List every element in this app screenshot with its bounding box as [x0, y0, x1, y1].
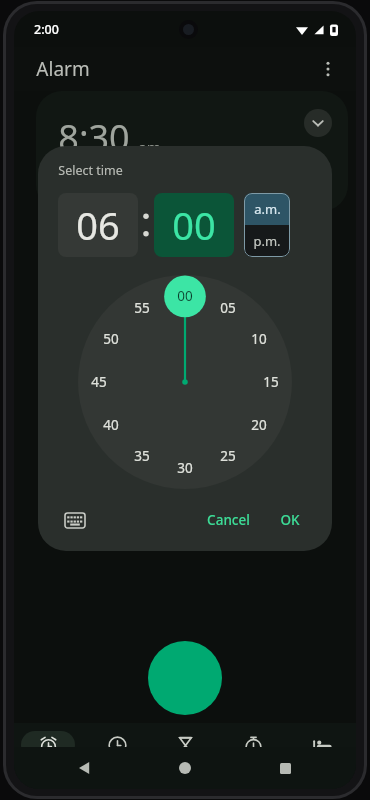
- staticText: 25: [220, 447, 236, 465]
- staticText: 45: [91, 373, 107, 391]
- staticText: Timer: [171, 763, 200, 777]
- button[interactable]: Stopwatch: [219, 723, 287, 777]
- button[interactable]: Switch to text input: [58, 503, 92, 537]
- button[interactable]: p.m.: [244, 225, 290, 257]
- button[interactable]: Home: [170, 753, 200, 783]
- button[interactable]: Cancel: [195, 503, 262, 537]
- staticText: 40: [103, 416, 119, 434]
- button[interactable]: More options: [308, 49, 348, 89]
- staticText: Select time: [58, 162, 123, 179]
- staticText: am: [138, 137, 161, 157]
- button[interactable]: Alarm: [14, 723, 82, 777]
- staticText: 00: [177, 287, 193, 305]
- staticText: a.m.: [254, 200, 281, 218]
- button[interactable]: Recent apps: [270, 753, 300, 783]
- staticText: 05: [220, 299, 236, 317]
- staticText: 20: [251, 416, 267, 434]
- button[interactable]: a.m.: [244, 193, 290, 225]
- staticText: 06: [76, 199, 120, 251]
- staticText: 8:30: [58, 113, 130, 162]
- staticText: 50: [103, 330, 119, 348]
- staticText: Alarm: [36, 56, 90, 82]
- button[interactable]: OK: [268, 503, 312, 537]
- staticText: 10: [251, 330, 267, 348]
- button[interactable]: 06: [58, 193, 138, 257]
- staticText: p.m.: [253, 232, 281, 250]
- staticText: 15: [263, 373, 279, 391]
- staticText: OK: [280, 511, 300, 529]
- button[interactable]: Expand alarm: [304, 109, 332, 137]
- button[interactable]: Clock: [83, 723, 151, 777]
- staticText: 55: [134, 299, 150, 317]
- staticText: 30: [177, 459, 193, 477]
- staticText: 35: [134, 447, 150, 465]
- button[interactable]: Timer: [151, 723, 219, 777]
- button[interactable]: 00: [154, 193, 234, 257]
- button[interactable]: Back: [70, 753, 100, 783]
- button[interactable]: Add alarm: [148, 641, 222, 715]
- button[interactable]: Bedtime: [288, 723, 356, 777]
- staticText: Cancel: [207, 511, 250, 529]
- staticText: 2:00: [34, 21, 59, 38]
- staticText: 00: [172, 199, 216, 251]
